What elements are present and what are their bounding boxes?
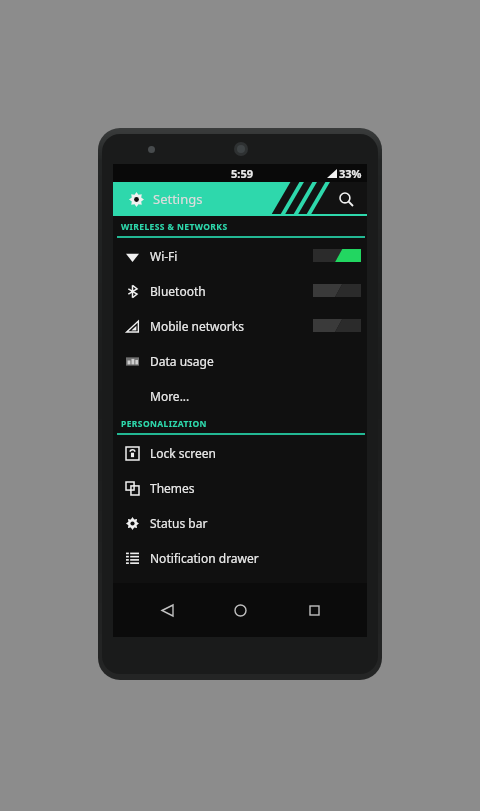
button[interactable]: Settings (121, 184, 151, 214)
button[interactable]: Mobile networks toggle (313, 319, 361, 332)
button[interactable]: Notification drawer (113, 540, 367, 575)
staticText: Lock screen (150, 445, 217, 461)
staticText: More... (150, 388, 190, 404)
staticText: Themes (150, 480, 195, 496)
button[interactable]: Themes (113, 470, 367, 505)
staticText: 5:59 (231, 166, 253, 181)
staticText: Settings (153, 190, 203, 208)
staticText: Data usage (150, 353, 214, 369)
button[interactable]: Back (147, 590, 187, 630)
button[interactable]: Mobile networks (113, 308, 367, 343)
button[interactable]: Wi-Fi toggle (313, 249, 361, 262)
button[interactable]: Status bar (113, 505, 367, 540)
button[interactable]: Home (220, 590, 260, 630)
staticText: Status bar (150, 515, 208, 531)
staticText: Notification drawer (150, 550, 259, 566)
button[interactable]: More... (113, 378, 367, 413)
staticText: 33% (339, 166, 362, 181)
staticText: WIRELESS & NETWORKS (121, 221, 228, 233)
button[interactable]: Recents (294, 590, 334, 630)
button[interactable]: Search (331, 184, 361, 214)
staticText: Bluetooth (150, 283, 206, 299)
button[interactable]: Lock screen (113, 435, 367, 470)
button[interactable]: Data usage (113, 343, 367, 378)
button[interactable]: Wi-Fi (113, 238, 367, 273)
staticText: Mobile networks (150, 318, 244, 334)
staticText: Wi-Fi (150, 248, 178, 264)
button[interactable]: Bluetooth toggle (313, 284, 361, 297)
staticText: PERSONALIZATION (121, 418, 207, 430)
button[interactable]: Bluetooth (113, 273, 367, 308)
